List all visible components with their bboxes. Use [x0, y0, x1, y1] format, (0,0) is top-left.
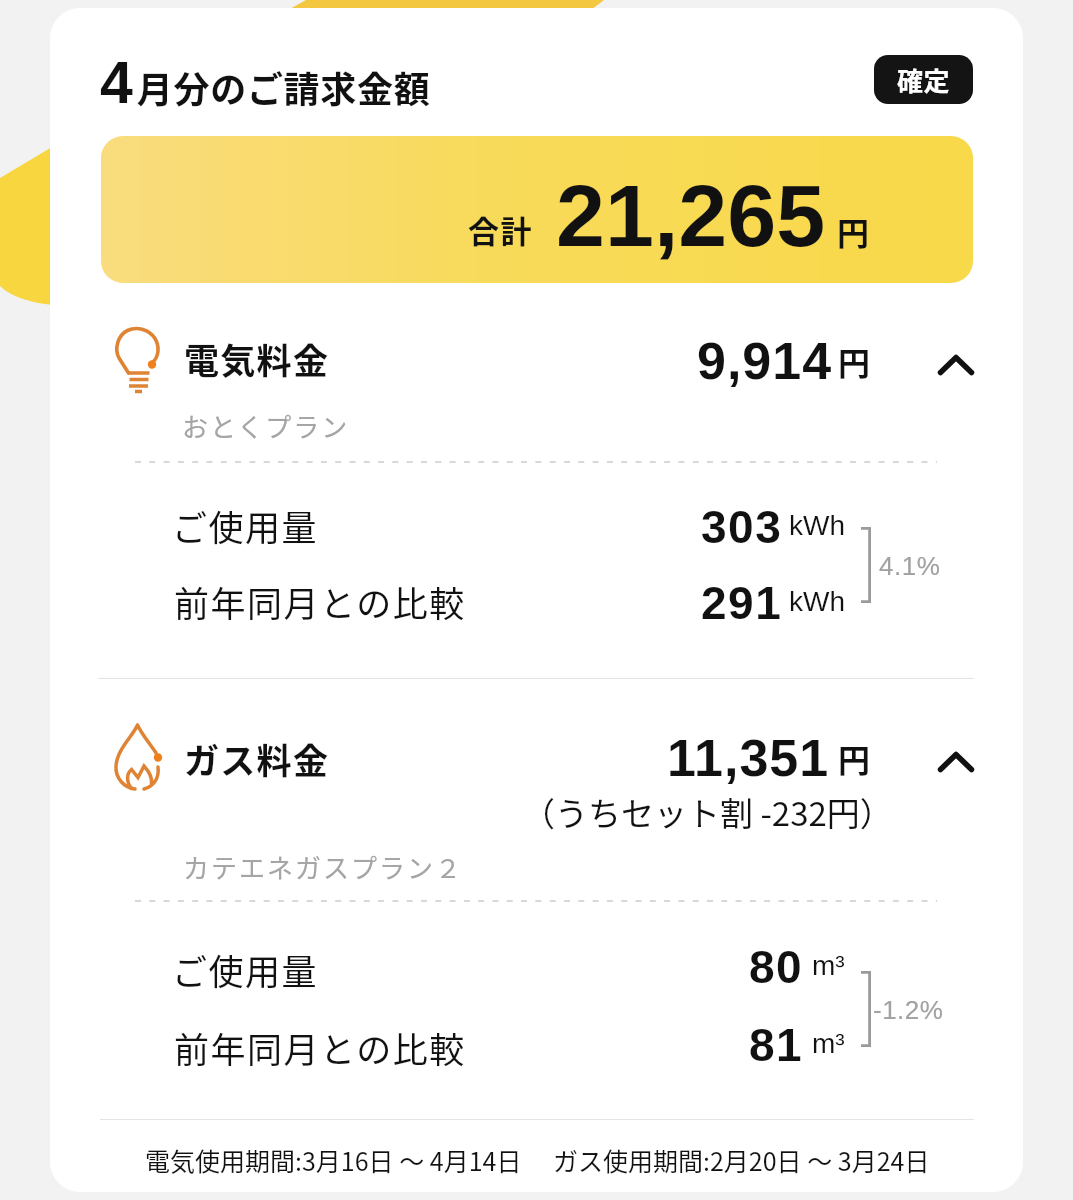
staticText: 21,265 [556, 166, 826, 264]
staticText: 確定 [897, 61, 951, 99]
staticText: 円 [838, 735, 871, 781]
staticText: 11,351 [667, 729, 830, 787]
staticText: 円 [838, 338, 871, 384]
staticText: 9,914 [697, 332, 833, 390]
staticText: 81 [749, 1019, 804, 1070]
button[interactable]: 電気料金を折りたたむ [938, 355, 974, 375]
staticText: ガス料金 [184, 733, 330, 784]
staticText: -1.2% [873, 995, 944, 1024]
staticText: kWh [789, 586, 845, 617]
staticText: ガス使用期間:2月20日 ～ 3月24日 [553, 1142, 930, 1178]
staticText: 電気使用期間:3月16日 ～ 4月14日 [145, 1142, 522, 1178]
staticText: 前年同月との比較 [174, 576, 466, 627]
staticText: 円 [837, 208, 870, 254]
staticText: kWh [789, 510, 845, 541]
staticText: 電気料金 [184, 333, 330, 384]
staticText: 合計 [468, 207, 533, 252]
button[interactable]: 確定 [874, 55, 973, 104]
staticText: 303 [701, 501, 783, 552]
button[interactable]: ガス料金を折りたたむ [938, 752, 974, 772]
staticText: 291 [701, 577, 783, 628]
staticText: おとくプラン [182, 407, 350, 445]
staticText: （うちセット割 -232円） [522, 788, 893, 836]
staticText: 4.1% [879, 551, 941, 580]
staticText: カテエネガスプラン２ [183, 848, 464, 886]
staticText: 前年同月との比較 [174, 1022, 466, 1073]
staticText: 80 [749, 941, 804, 992]
staticText: ご使用量 [172, 944, 319, 995]
staticText: m³ [812, 950, 845, 981]
staticText: ご使用量 [172, 500, 319, 551]
staticText: 4月分のご請求金額 [100, 50, 431, 116]
staticText: m³ [812, 1028, 845, 1059]
